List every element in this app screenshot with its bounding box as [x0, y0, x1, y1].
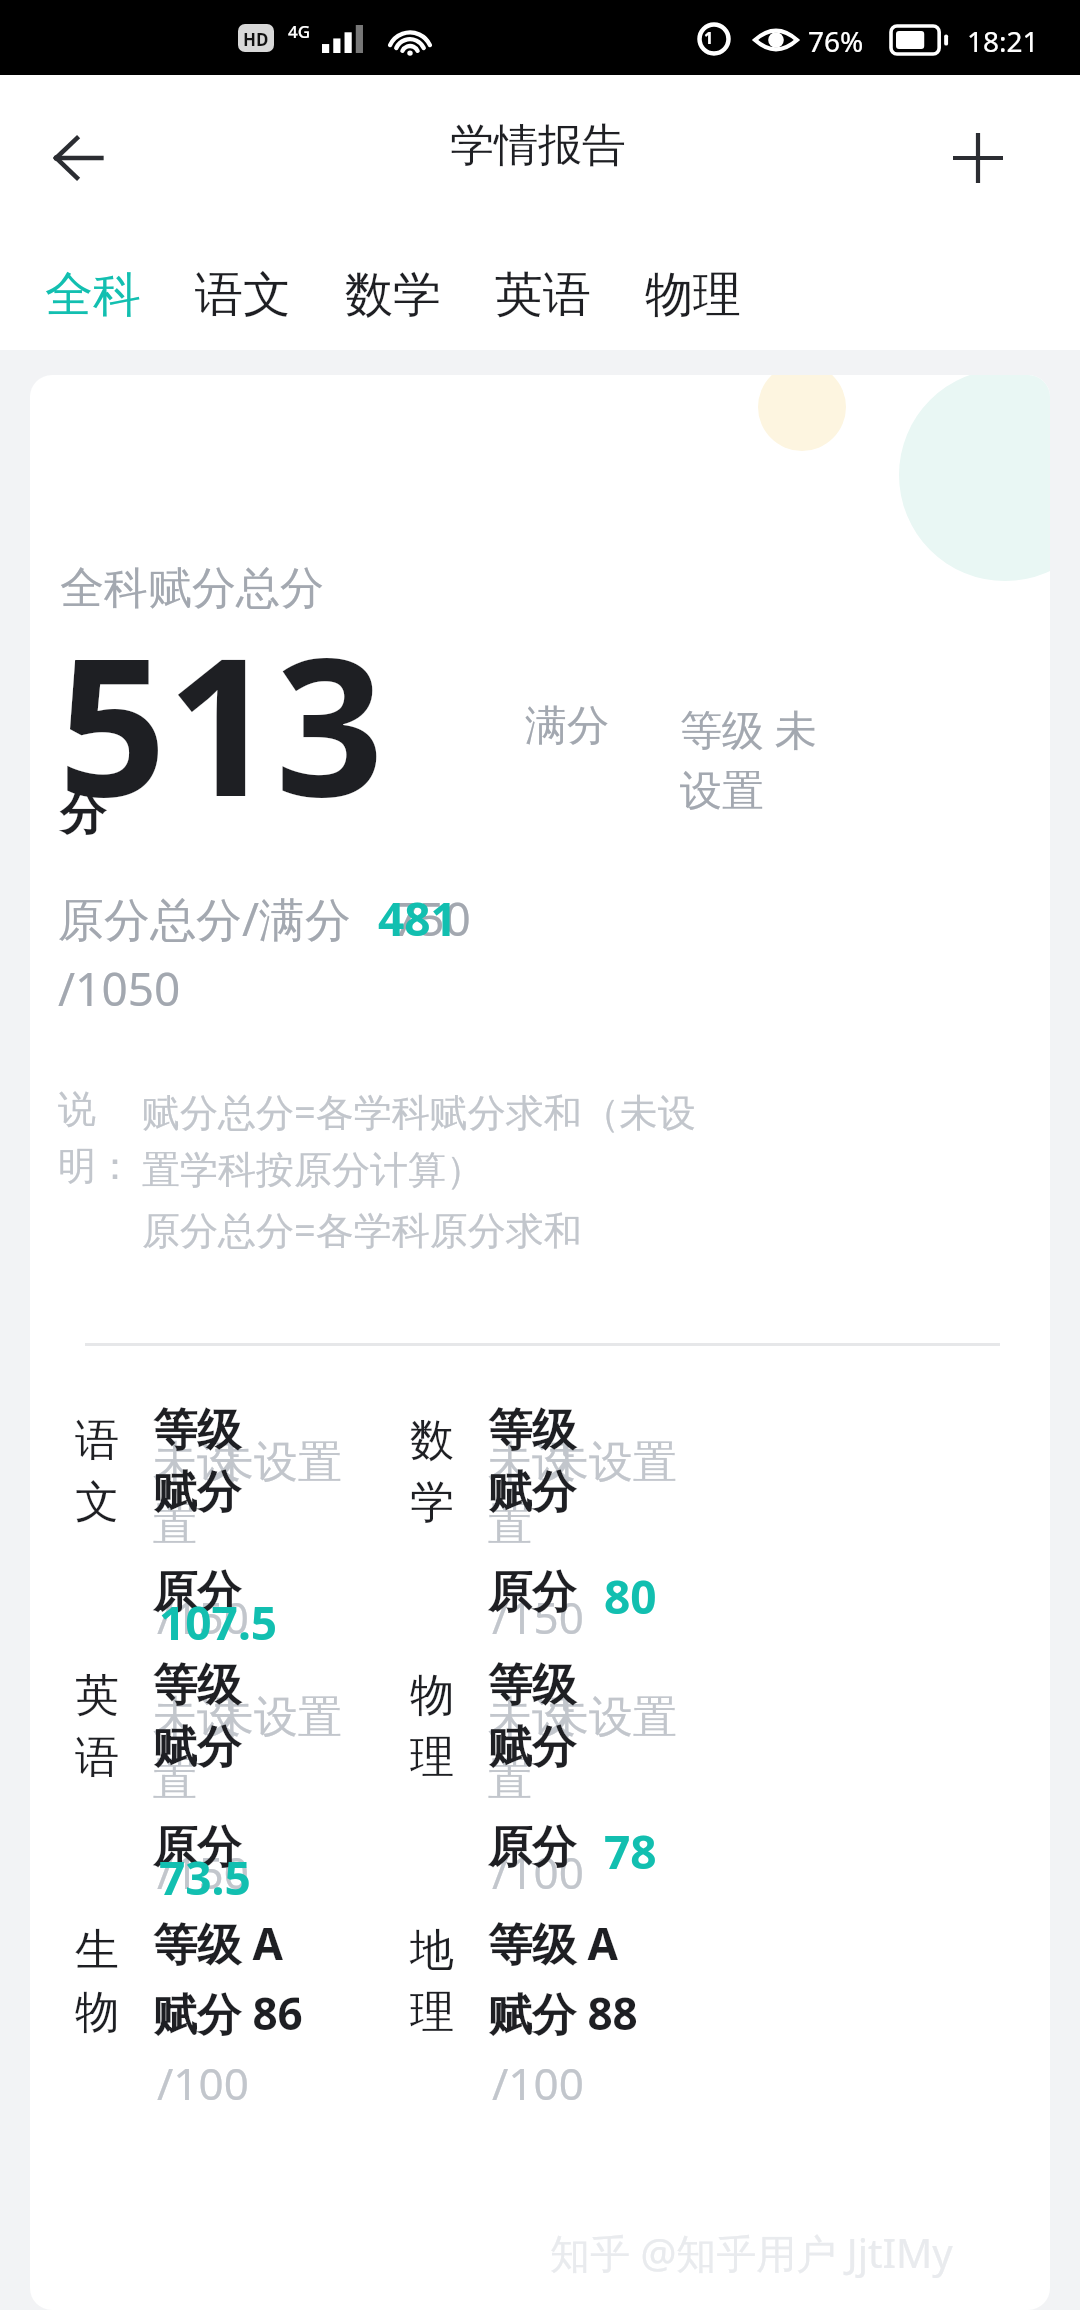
button[interactable]: 添加: [930, 110, 1026, 206]
staticText: 等级 A: [153, 1913, 283, 1973]
button[interactable]: 全科: [18, 240, 168, 350]
staticText: 78: [604, 1820, 657, 1883]
staticText: 英语: [495, 265, 591, 325]
staticText: 等级 赋分: [153, 1403, 241, 1520]
button[interactable]: 数 学: [410, 1395, 740, 1645]
button[interactable]: 英语: [468, 240, 618, 350]
staticText: HD: [243, 28, 269, 51]
staticText: 未设 置: [153, 1690, 241, 1807]
staticText: 语 文: [75, 1413, 119, 1530]
button[interactable]: 物理: [618, 240, 768, 350]
staticText: 原分总分/满分: [58, 887, 352, 950]
staticText: 原分: [153, 1565, 241, 1620]
button[interactable]: 学情报告: [450, 118, 626, 173]
button[interactable]: 英 语: [75, 1650, 405, 1900]
staticText: 满分: [525, 700, 609, 753]
staticText: 未设 置: [153, 1435, 241, 1552]
staticText: 赋分 88: [488, 1983, 638, 2043]
button[interactable]: 语文: [168, 240, 318, 350]
button[interactable]: 全科赋分总分: [30, 375, 1050, 2310]
staticText: 4G: [288, 20, 311, 43]
staticText: 生 物: [75, 1923, 119, 2040]
staticText: 107.5: [159, 1591, 278, 1654]
staticText: 分: [60, 785, 106, 843]
staticText: 原分: [153, 1820, 241, 1875]
staticText: 英 语: [75, 1668, 119, 1785]
staticText: /100: [492, 1842, 584, 1902]
staticText: 18:21: [967, 22, 1039, 60]
staticText: 未设 置: [488, 1435, 576, 1552]
staticText: 750: [392, 887, 471, 950]
staticText: 481: [378, 887, 457, 950]
staticText: 地 理: [410, 1923, 454, 2040]
staticText: 全科赋分总分: [60, 561, 324, 616]
button[interactable]: 生 物: [75, 1905, 405, 2155]
button[interactable]: 返回: [30, 110, 126, 206]
staticText: 知乎 @知乎用户 JjtIMy: [550, 2225, 953, 2280]
staticText: 原分: [488, 1565, 576, 1620]
staticText: 赋分 86: [153, 1983, 303, 2043]
staticText: 未设置: [545, 1690, 677, 1745]
staticText: 等级 未 设置: [680, 700, 817, 817]
staticText: 等级 赋分: [488, 1658, 576, 1775]
staticText: 76%: [808, 22, 864, 60]
staticText: 数学: [345, 265, 441, 325]
button[interactable]: 语 文: [75, 1395, 405, 1645]
staticText: 未设置: [545, 1435, 677, 1490]
staticText: 物理: [645, 265, 741, 325]
staticText: 未设置: [210, 1435, 342, 1490]
button[interactable]: 地 理: [410, 1905, 740, 2155]
button[interactable]: 物 理: [410, 1650, 740, 1900]
staticText: 等级 赋分: [153, 1658, 241, 1775]
staticText: 未设 置: [488, 1690, 576, 1807]
staticText: 等级 A: [488, 1913, 618, 1973]
staticText: /100: [492, 2053, 584, 2113]
staticText: /1050: [58, 957, 181, 1020]
staticText: 80: [604, 1565, 657, 1628]
staticText: /150: [157, 1842, 249, 1902]
staticText: 说 明：: [58, 1085, 134, 1191]
staticText: /150: [492, 1587, 584, 1647]
staticText: 赋分总分=各学科赋分求和（未设 置学科按原分计算） 原分总分=各学科原分求和: [142, 1085, 696, 1255]
staticText: 原分: [488, 1820, 576, 1875]
staticText: 物 理: [410, 1668, 454, 1785]
staticText: 未设置: [210, 1690, 342, 1745]
staticText: /100: [157, 2053, 249, 2113]
staticText: 全科: [45, 265, 141, 325]
staticText: 语文: [195, 265, 291, 325]
staticText: 1: [704, 27, 714, 49]
staticText: 数 学: [410, 1413, 454, 1530]
staticText: 513: [58, 593, 385, 852]
button[interactable]: 数学: [318, 240, 468, 350]
staticText: 73.5: [159, 1846, 251, 1909]
staticText: /150: [157, 1587, 249, 1647]
staticText: 等级 赋分: [488, 1403, 576, 1520]
